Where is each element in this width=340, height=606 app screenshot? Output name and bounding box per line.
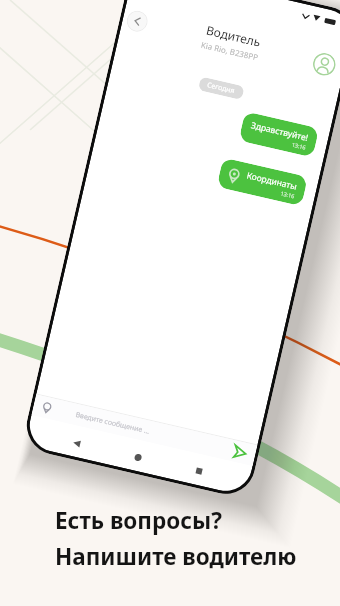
button[interactable]: Send location: [40, 401, 54, 414]
staticText: 13:16: [291, 141, 307, 151]
staticText: Сегодня: [206, 80, 236, 96]
button[interactable]: Координаты: [216, 157, 308, 206]
staticText: Здравствуйте!: [250, 119, 310, 144]
staticText: Координаты: [245, 169, 299, 193]
staticText: Напишите водителю: [55, 541, 297, 572]
button[interactable]: Back: [125, 9, 150, 34]
staticText: Введите сообщение ...: [74, 410, 151, 437]
button[interactable]: Здравствуйте!: [238, 111, 319, 158]
button[interactable]: Back: [71, 438, 81, 448]
button[interactable]: Driver profile: [310, 50, 338, 78]
staticText: 13:16: [280, 189, 296, 200]
button[interactable]: Send: [231, 443, 249, 461]
staticText: Водитель: [205, 22, 263, 50]
button[interactable]: Recents: [194, 466, 204, 476]
staticText: Kia Rio, В238РР: [200, 39, 260, 63]
button[interactable]: Home: [133, 452, 142, 462]
staticText: Есть вопросы?: [55, 505, 222, 536]
